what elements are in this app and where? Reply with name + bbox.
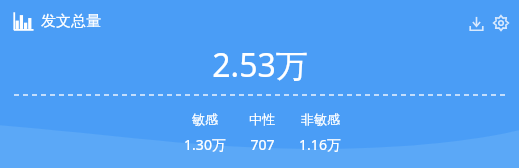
button[interactable]: 中性 [234, 111, 290, 154]
button[interactable]: 敏感 [176, 111, 234, 154]
button[interactable]: 非敏感 [290, 111, 350, 154]
staticText: 1.30万 [184, 135, 226, 154]
staticText: 中性 [249, 111, 275, 127]
staticText: 1.16万 [299, 135, 341, 154]
staticText: 发文总量 [41, 12, 101, 31]
button[interactable]: Settings [490, 12, 512, 34]
staticText: 2.53万 [212, 43, 308, 87]
staticText: 敏感 [192, 111, 218, 127]
staticText: 707 [250, 135, 275, 154]
staticText: 非敏感 [301, 111, 340, 127]
button[interactable]: Download [466, 13, 487, 34]
